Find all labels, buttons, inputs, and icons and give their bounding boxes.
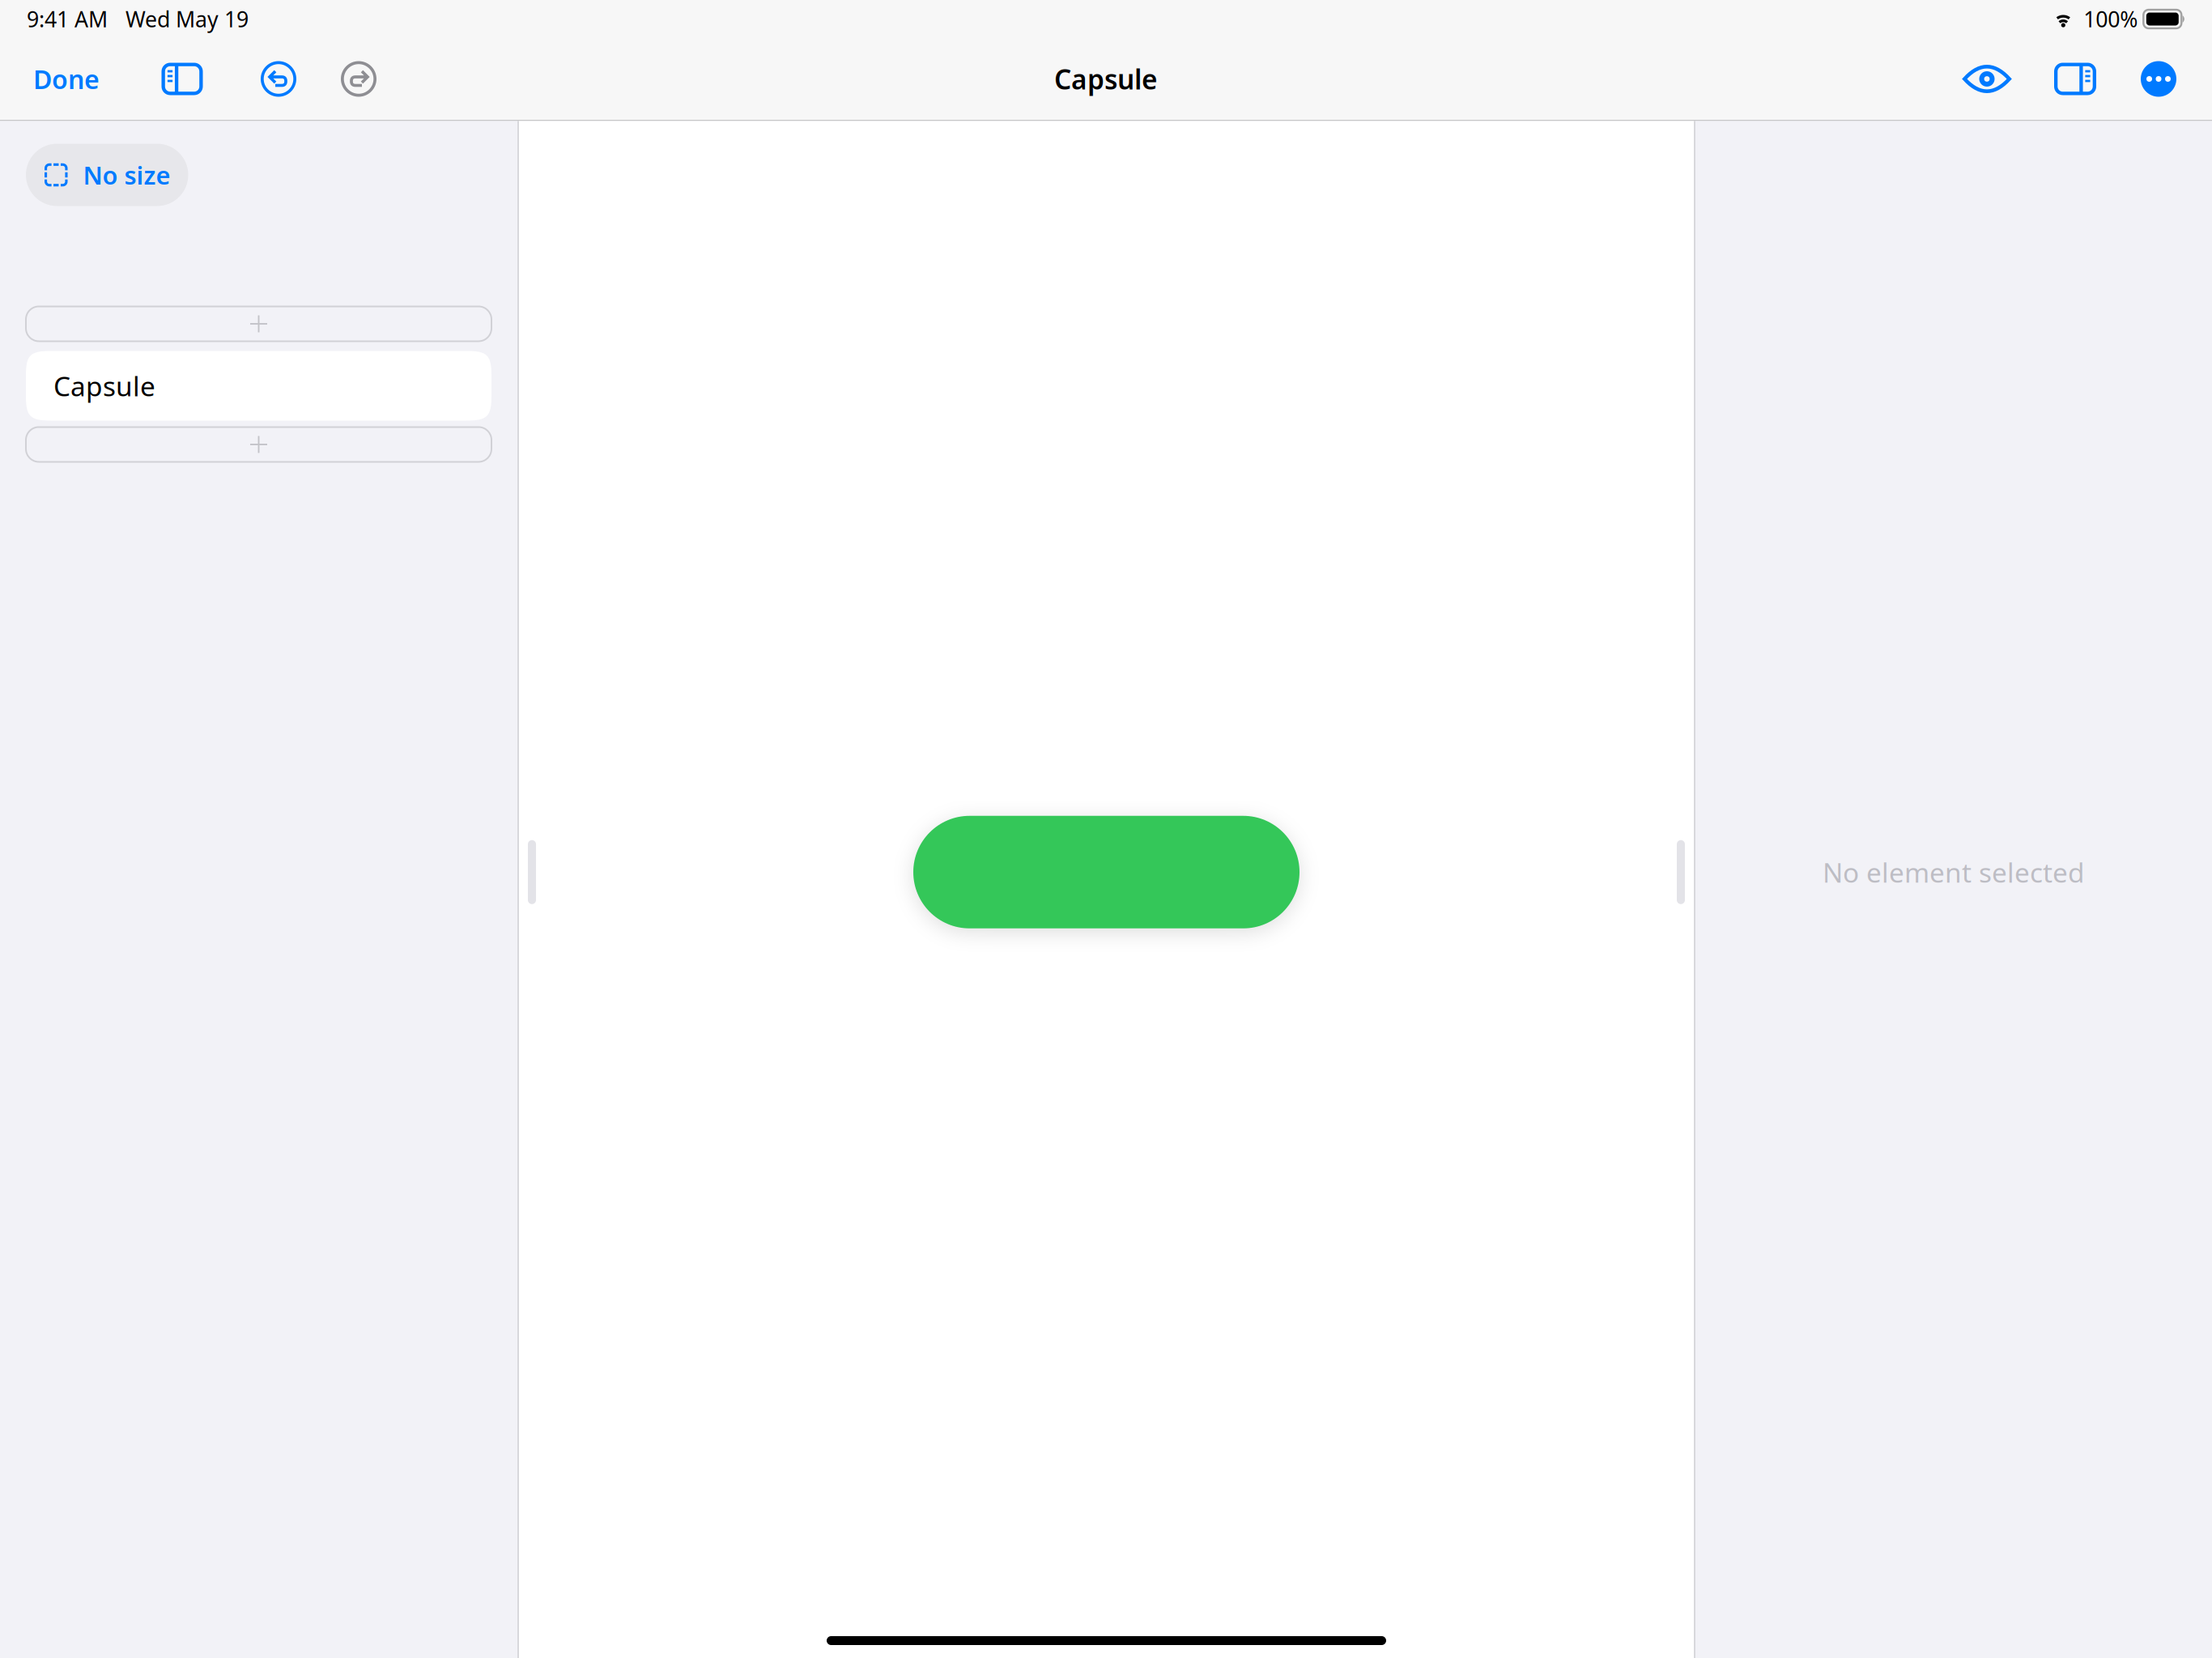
button[interactable]: No size [26,144,188,206]
button[interactable]: Preview [1963,49,2011,109]
staticText: Capsule [1054,61,1158,97]
staticText: No size [83,158,170,191]
button[interactable]: Show inspector [2054,49,2096,109]
button[interactable]: Insert above [26,306,491,341]
button[interactable]: More [2141,49,2176,109]
staticText: Capsule [53,368,155,404]
staticText: 100% [2084,5,2138,33]
button[interactable]: Insert below [26,427,491,462]
button[interactable]: Redo [340,49,377,109]
button[interactable]: Show library [161,49,203,109]
button[interactable]: Done [23,49,109,109]
staticText: No element selected [1823,854,2085,890]
button[interactable]: Undo [260,49,297,109]
button[interactable]: Capsule [26,351,491,421]
staticText: 9:41 AM [27,5,108,33]
staticText: Wed May 19 [125,5,249,33]
staticText: Done [33,62,100,96]
